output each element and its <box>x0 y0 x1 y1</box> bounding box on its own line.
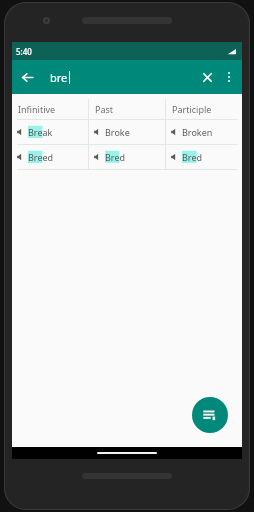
button[interactable]: Breed <box>12 145 88 169</box>
staticText: Breed <box>28 151 54 163</box>
staticText: Broke <box>105 126 130 138</box>
staticText: bre <box>50 70 68 85</box>
button[interactable]: More options <box>218 66 240 88</box>
button[interactable]: Broken <box>166 120 242 144</box>
staticText: Participle <box>172 103 212 115</box>
staticText: Bred <box>105 151 125 163</box>
staticText: Infinitive <box>18 103 56 115</box>
button[interactable]: Bred <box>166 145 242 169</box>
button[interactable]: Bred <box>89 145 165 169</box>
button[interactable]: Broke <box>89 120 165 144</box>
staticText: Bred <box>182 151 202 163</box>
staticText: 5:40 <box>16 46 32 57</box>
staticText: Break <box>28 126 53 138</box>
button[interactable]: Clear query <box>194 64 220 90</box>
button[interactable]: Send feedback <box>192 397 228 433</box>
button[interactable]: Break <box>12 120 88 144</box>
staticText: Past <box>95 103 114 115</box>
button[interactable]: Back <box>12 62 42 92</box>
staticText: Broken <box>182 126 213 138</box>
